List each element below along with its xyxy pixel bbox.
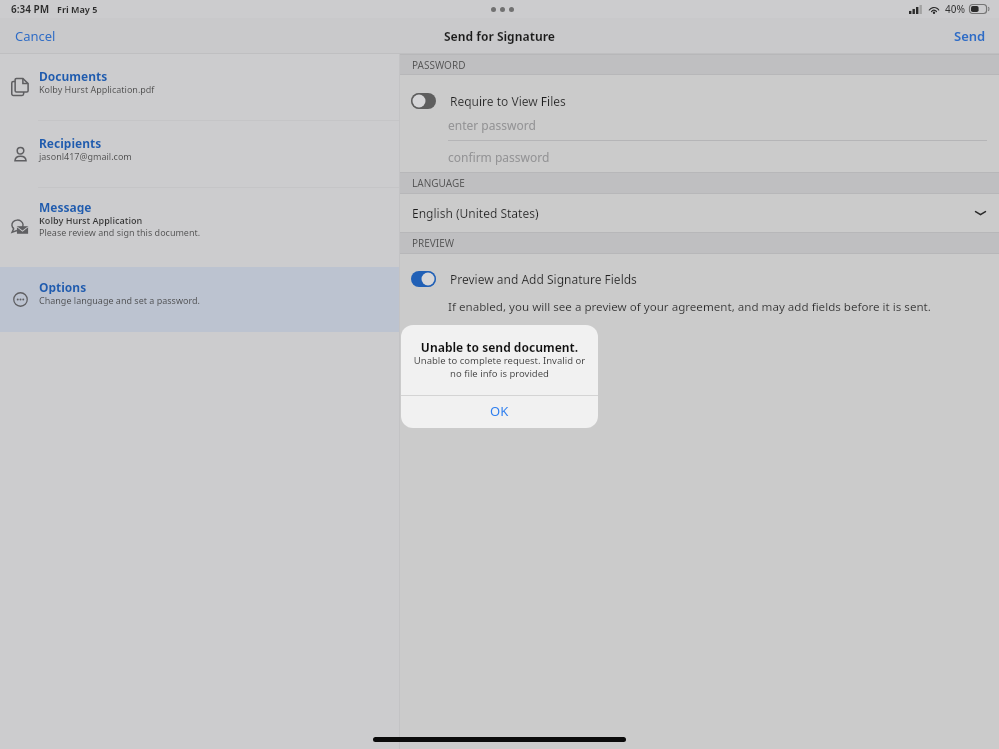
- staticText: Preview and Add Signature Fields: [450, 271, 637, 287]
- button[interactable]: OK: [401, 396, 598, 428]
- button[interactable]: Toggle off: [411, 93, 436, 109]
- staticText: Recipients: [39, 135, 102, 150]
- staticText: Unable to complete request. Invalid or n…: [413, 354, 586, 380]
- staticText: 6:34 PM: [11, 2, 50, 16]
- button[interactable]: Documents: [0, 54, 399, 120]
- button[interactable]: Recipients: [0, 121, 399, 187]
- button[interactable]: confirm password: [400, 146, 999, 168]
- staticText: Kolby Hurst Application.pdf: [39, 83, 155, 95]
- staticText: enter password: [448, 117, 536, 133]
- staticText: Please review and sign this document.: [39, 226, 201, 238]
- button[interactable]: Toggle on: [400, 254, 999, 303]
- staticText: PASSWORD: [412, 58, 466, 72]
- button[interactable]: Toggle on: [411, 271, 436, 287]
- staticText: Require to View Files: [450, 93, 566, 109]
- staticText: jasonl417@gmail.com: [39, 150, 132, 162]
- button[interactable]: Options: [0, 267, 399, 332]
- staticText: confirm password: [448, 149, 550, 165]
- staticText: Kolby Hurst Application: [39, 214, 143, 226]
- staticText: OK: [490, 402, 509, 420]
- staticText: Cancel: [15, 27, 56, 45]
- button[interactable]: Multitasking controls: [489, 3, 516, 16]
- button[interactable]: enter password: [400, 114, 999, 136]
- staticText: English (United States): [412, 205, 539, 221]
- button[interactable]: Send: [939, 20, 999, 52]
- staticText: Documents: [39, 68, 108, 83]
- button[interactable]: English (United States): [400, 194, 999, 232]
- staticText: Send for Signature: [444, 28, 555, 44]
- staticText: Change language and set a password.: [39, 294, 200, 306]
- staticText: 40%: [945, 2, 965, 16]
- button[interactable]: Cancel: [0, 20, 71, 52]
- staticText: If enabled, you will see a preview of yo…: [448, 299, 931, 315]
- button[interactable]: Toggle off: [400, 75, 999, 126]
- staticText: Unable to send document.: [401, 339, 598, 353]
- staticText: LANGUAGE: [412, 176, 465, 190]
- button[interactable]: Message: [0, 188, 399, 267]
- staticText: Fri May 5: [57, 3, 98, 15]
- staticText: Options: [39, 279, 87, 294]
- staticText: PREVIEW: [412, 236, 455, 250]
- staticText: Message: [39, 199, 92, 214]
- staticText: Send: [954, 27, 986, 45]
